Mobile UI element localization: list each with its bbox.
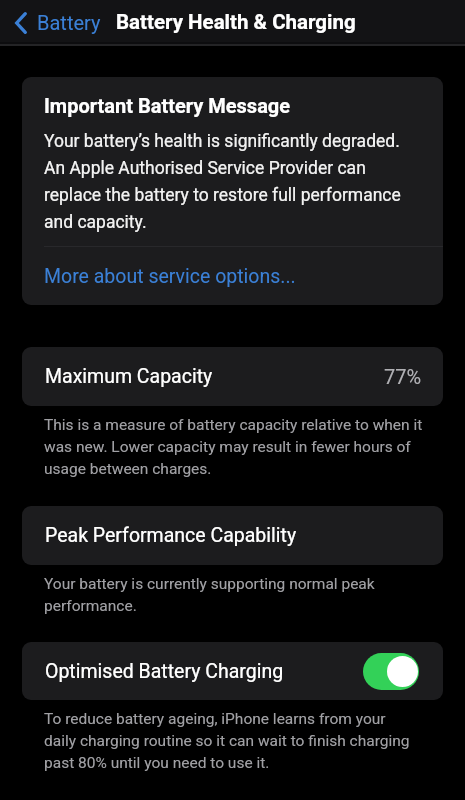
button[interactable]: Back to Battery xyxy=(0,7,107,38)
staticText: 77% xyxy=(384,365,422,388)
staticText: More about service options... xyxy=(44,265,296,288)
staticText: This is a measure of battery capacity re… xyxy=(44,412,443,478)
staticText: Optimised Battery Charging xyxy=(45,660,284,683)
button[interactable]: Optimised Battery Charging xyxy=(22,642,443,700)
button[interactable]: More about service options... xyxy=(22,247,443,305)
button[interactable]: Optimised Battery Charging toggle xyxy=(363,653,419,690)
staticText: Maximum Capacity xyxy=(45,365,213,388)
button[interactable]: Peak Performance Capability xyxy=(22,506,443,565)
button[interactable]: Maximum Capacity xyxy=(22,347,443,406)
staticText: Your battery is currently supporting nor… xyxy=(44,571,443,615)
staticText: Your battery’s health is significantly d… xyxy=(44,125,401,233)
staticText: Important Battery Message xyxy=(44,94,291,117)
staticText: Battery xyxy=(37,11,101,34)
staticText: Battery Health & Charging xyxy=(116,10,356,34)
staticText: Peak Performance Capability xyxy=(45,524,297,547)
staticText: To reduce battery ageing, iPhone learns … xyxy=(44,706,443,772)
